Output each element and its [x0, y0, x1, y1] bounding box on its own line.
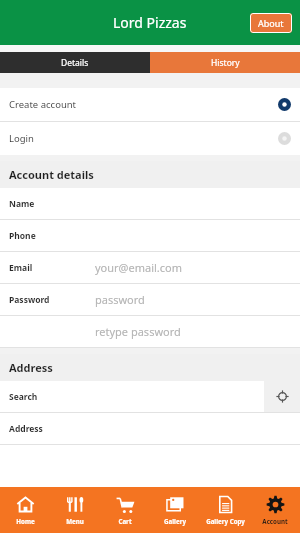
- button[interactable]: Details: [0, 52, 150, 73]
- staticText: History: [211, 57, 240, 69]
- staticText: Name: [9, 198, 35, 210]
- button[interactable]: Cart: [100, 487, 150, 533]
- button[interactable]: History: [150, 52, 300, 73]
- staticText: Login: [9, 132, 278, 145]
- button[interactable]: Menu: [50, 487, 100, 533]
- staticText: Details: [61, 57, 89, 69]
- button[interactable]: About: [250, 13, 292, 33]
- button[interactable]: Address: [0, 413, 300, 444]
- button[interactable]: Name: [0, 188, 300, 219]
- button[interactable]: retype password: [0, 316, 300, 347]
- staticText: Address: [9, 360, 53, 375]
- staticText: Gallery Copy: [206, 517, 245, 525]
- button[interactable]: Search: [0, 381, 264, 412]
- staticText: retype password: [95, 324, 181, 339]
- button[interactable]: Account: [250, 487, 300, 533]
- button[interactable]: Gallery: [150, 487, 200, 533]
- staticText: Password: [9, 294, 50, 306]
- staticText: About: [258, 17, 284, 29]
- staticText: your@email.com: [95, 260, 182, 275]
- button[interactable]: Login: [0, 122, 300, 155]
- button[interactable]: Create account: [0, 88, 300, 121]
- staticText: Account details: [9, 167, 94, 182]
- button[interactable]: Phone: [0, 220, 300, 251]
- button[interactable]: Gallery Copy: [200, 487, 250, 533]
- button[interactable]: Use current location: [264, 381, 300, 412]
- staticText: Menu: [66, 517, 84, 525]
- button[interactable]: Password: [0, 284, 300, 315]
- staticText: Create account: [9, 98, 278, 111]
- staticText: Email: [9, 262, 33, 274]
- staticText: Search: [9, 391, 38, 403]
- staticText: Gallery: [164, 517, 186, 525]
- staticText: Home: [16, 517, 35, 525]
- staticText: password: [95, 292, 145, 307]
- staticText: Lord Pizzas: [113, 13, 187, 32]
- button[interactable]: Email: [0, 252, 300, 283]
- staticText: Account: [262, 517, 288, 525]
- button[interactable]: Home: [0, 487, 50, 533]
- staticText: Address: [9, 423, 43, 435]
- staticText: Phone: [9, 230, 36, 242]
- staticText: Cart: [118, 517, 132, 525]
